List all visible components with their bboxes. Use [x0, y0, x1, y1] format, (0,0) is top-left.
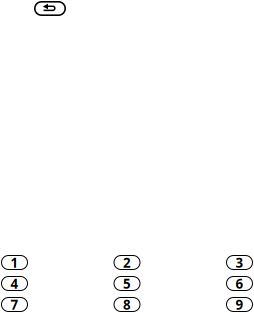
button[interactable]: 7: [1, 297, 28, 312]
staticText: 2: [123, 254, 131, 271]
staticText: 8: [123, 296, 131, 313]
button[interactable]: Undo: [34, 1, 66, 16]
button[interactable]: 8: [113, 297, 140, 312]
staticText: 7: [10, 296, 18, 313]
staticText: 4: [10, 275, 18, 292]
staticText: 6: [235, 275, 243, 292]
staticText: 9: [235, 296, 243, 313]
button[interactable]: 9: [226, 297, 253, 312]
staticText: 1: [10, 254, 18, 271]
button[interactable]: 6: [226, 276, 253, 291]
button[interactable]: 4: [1, 276, 28, 291]
button[interactable]: 5: [113, 276, 140, 291]
staticText: 3: [235, 254, 243, 271]
button[interactable]: 3: [226, 255, 253, 270]
button[interactable]: 2: [113, 255, 140, 270]
staticText: 5: [123, 275, 131, 292]
button[interactable]: 1: [1, 255, 28, 270]
